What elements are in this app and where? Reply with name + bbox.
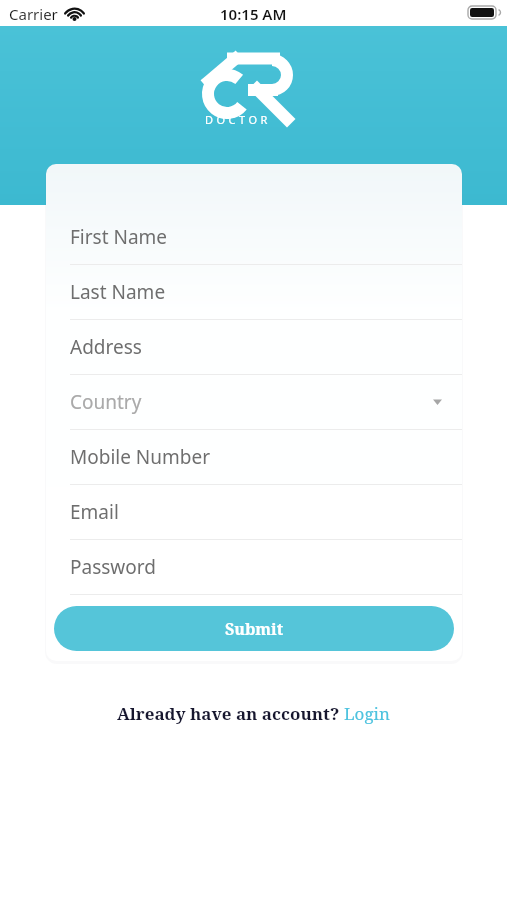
button[interactable]: Submit xyxy=(54,606,454,651)
staticText: Submit xyxy=(225,618,284,640)
staticText: Already have an account? xyxy=(117,702,344,725)
staticText: DOCTOR xyxy=(205,112,271,127)
button[interactable]: Password xyxy=(46,540,462,594)
staticText: Login xyxy=(344,702,390,725)
staticText: Country xyxy=(70,389,142,415)
button[interactable]: Email xyxy=(46,485,462,539)
button[interactable]: First Name xyxy=(46,210,462,264)
staticText: First Name xyxy=(70,224,168,250)
staticText: Email xyxy=(70,499,119,525)
button[interactable]: Last Name xyxy=(46,265,462,319)
staticText: Password xyxy=(70,554,156,580)
staticText: Mobile Number xyxy=(70,444,211,470)
staticText: Carrier xyxy=(9,4,58,24)
staticText: Last Name xyxy=(70,279,166,305)
button[interactable]: Login xyxy=(344,702,390,725)
button[interactable]: Address xyxy=(46,320,462,374)
button[interactable]: Mobile Number xyxy=(46,430,462,484)
button[interactable]: Country xyxy=(46,375,462,429)
staticText: Address xyxy=(70,334,142,360)
staticText: 10:15 AM xyxy=(220,4,287,24)
